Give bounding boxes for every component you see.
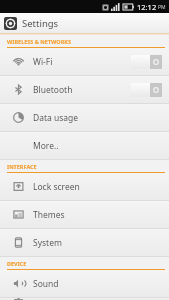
button[interactable]: System [0,229,169,256]
staticText: Themes [33,209,169,221]
button[interactable]: Wi-Fi [0,48,169,75]
staticText: Bluetooth [33,84,131,96]
staticText: INTERFACE [7,163,37,170]
button[interactable]: Bluetooth [0,76,169,103]
button[interactable]: Toggle [131,83,162,97]
staticText: Data usage [33,112,169,124]
button[interactable]: Display [0,298,169,300]
staticText: More.. [33,140,169,152]
button[interactable]: Data usage [0,104,169,131]
staticText: Sound [33,278,169,290]
staticText: DEVICE [7,260,27,267]
staticText: Lock screen [33,181,169,193]
button[interactable]: Toggle [131,55,162,69]
button[interactable]: More.. [0,132,169,159]
staticText: System [33,237,169,249]
button[interactable]: App icon [4,17,17,30]
staticText: PM [158,4,166,11]
button[interactable]: Sound [0,270,169,297]
staticText: WIRELESS & NETWORKS [7,38,71,45]
button[interactable]: Lock screen [0,173,169,200]
staticText: Wi-Fi [33,56,131,68]
staticText: Settings [22,17,59,30]
staticText: 12:12 [137,2,157,12]
button[interactable]: Themes [0,201,169,228]
